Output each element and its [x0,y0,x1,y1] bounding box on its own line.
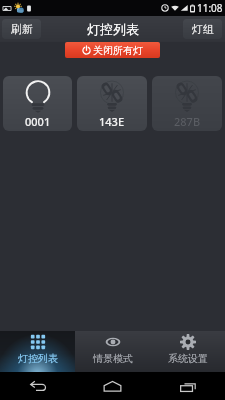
staticText: 灯组 [192,22,214,36]
staticText: 刷新 [11,22,33,36]
button[interactable]: 灯控列表 [0,331,75,372]
button[interactable]: 0001 [3,76,72,131]
staticText: 11:08 [197,1,223,15]
button[interactable]: 刷新 [2,19,41,39]
staticText: 287B [174,114,201,129]
button[interactable]: Back [0,372,75,400]
staticText: 灯控列表 [18,352,58,365]
button[interactable]: 情景模式 [75,331,150,372]
button[interactable]: 143E [77,76,147,131]
staticText: 情景模式 [93,352,133,365]
staticText: 灯控列表 [87,21,139,37]
button[interactable]: 灯组 [183,19,222,39]
button[interactable]: 关闭所有灯 [65,42,160,58]
button[interactable]: 系统设置 [150,331,225,372]
staticText: 0001 [25,114,51,129]
button[interactable]: Recents [150,372,225,400]
staticText: 143E [99,114,125,129]
staticText: 关闭所有灯 [93,44,143,57]
button[interactable]: Home [75,372,150,400]
staticText: 系统设置 [168,352,208,365]
button[interactable]: 287B [152,76,222,131]
